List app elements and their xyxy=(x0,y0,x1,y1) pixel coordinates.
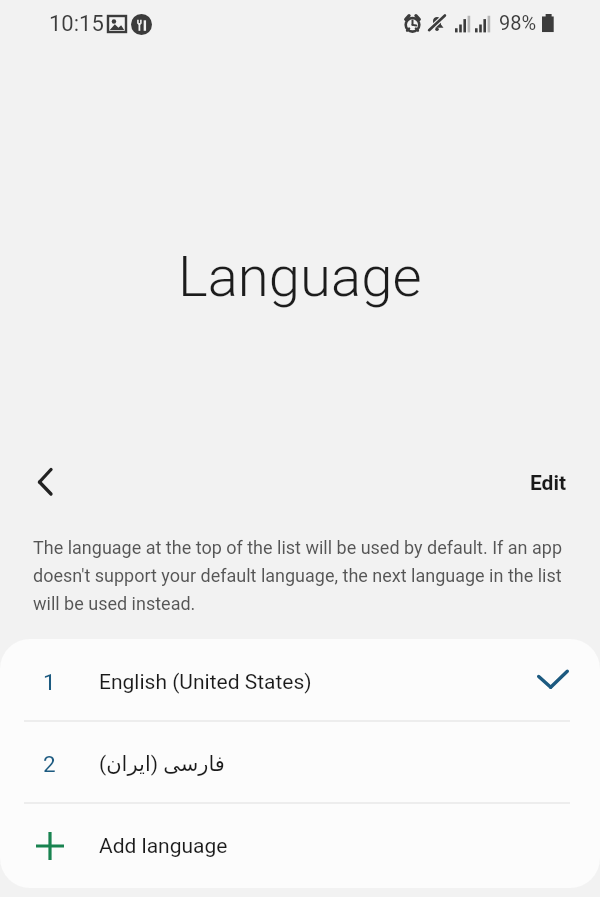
button[interactable]: Add language xyxy=(0,803,600,885)
staticText: Edit xyxy=(530,471,567,496)
staticText: English (United States) xyxy=(99,670,312,695)
staticText: 10:15 xyxy=(49,11,104,37)
staticText: فارسی (ایران) xyxy=(99,752,225,777)
button[interactable]: 2 xyxy=(0,721,600,803)
staticText: The language at the top of the list will… xyxy=(33,537,578,615)
staticText: 98% xyxy=(499,11,537,34)
button[interactable]: Navigate up xyxy=(12,455,68,511)
staticText: 1 xyxy=(43,669,56,695)
staticText: 2 xyxy=(43,751,56,777)
button[interactable]: Edit xyxy=(512,462,585,505)
staticText: Language xyxy=(178,244,422,310)
button[interactable]: 1 xyxy=(0,639,600,721)
staticText: Add language xyxy=(99,834,228,859)
